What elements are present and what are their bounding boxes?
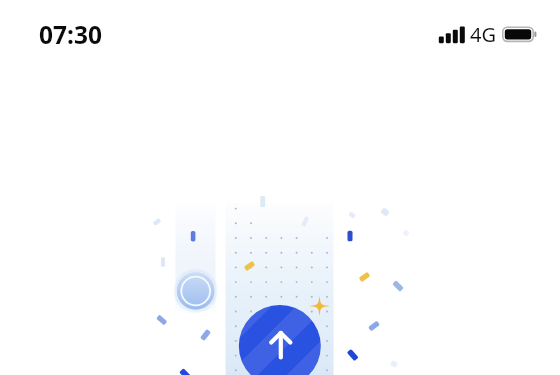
other: Battery full <box>502 24 540 46</box>
staticText: 4G <box>470 21 496 48</box>
other: Mobile signal strength <box>438 25 466 45</box>
staticText: 07:30 <box>39 18 102 51</box>
